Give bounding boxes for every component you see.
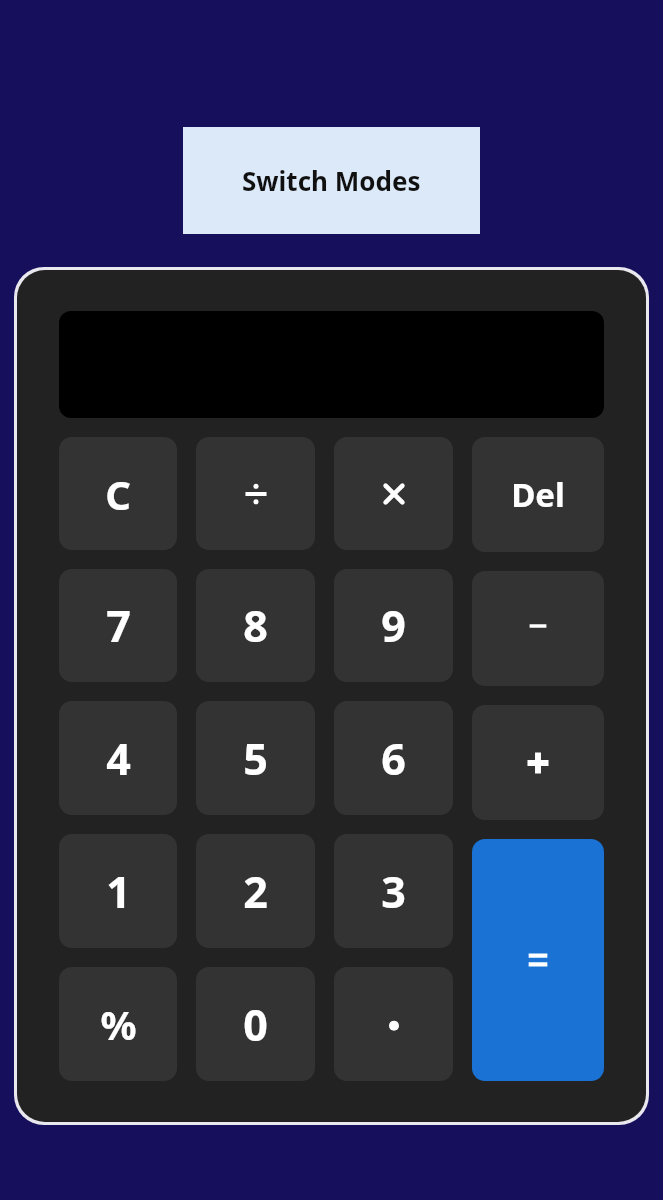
staticText: 3 bbox=[381, 862, 406, 921]
button[interactable]: Equals bbox=[472, 839, 604, 1081]
button[interactable]: 2 bbox=[196, 834, 315, 948]
button[interactable]: Switch Modes bbox=[183, 127, 480, 234]
button[interactable]: 4 bbox=[59, 701, 177, 815]
button[interactable]: Divide bbox=[196, 437, 315, 550]
button[interactable]: Decimal point bbox=[334, 967, 453, 1081]
button[interactable]: 3 bbox=[334, 834, 453, 948]
staticText: Switch Modes bbox=[242, 163, 421, 198]
staticText: 8 bbox=[243, 596, 268, 655]
button[interactable]: 7 bbox=[59, 569, 177, 682]
staticText: 6 bbox=[381, 729, 406, 788]
staticText: 5 bbox=[243, 729, 268, 788]
staticText: C bbox=[105, 467, 131, 521]
button[interactable]: 9 bbox=[334, 569, 453, 682]
staticText: 4 bbox=[106, 729, 131, 788]
button[interactable]: % bbox=[59, 967, 177, 1081]
button[interactable]: 0 bbox=[196, 967, 315, 1081]
staticText: 9 bbox=[381, 596, 406, 655]
button[interactable]: Multiply bbox=[334, 437, 453, 550]
button[interactable]: 1 bbox=[59, 834, 177, 948]
staticText: % bbox=[100, 997, 137, 1051]
button[interactable]: C bbox=[59, 437, 177, 550]
staticText: 2 bbox=[243, 862, 268, 921]
button[interactable]: Del bbox=[472, 437, 604, 552]
staticText: 0 bbox=[243, 995, 268, 1054]
staticText: 1 bbox=[106, 862, 131, 921]
button[interactable]: 8 bbox=[196, 569, 315, 682]
staticText: Del bbox=[511, 472, 565, 517]
button[interactable]: 6 bbox=[334, 701, 453, 815]
button[interactable]: Minus bbox=[472, 571, 604, 686]
staticText: 7 bbox=[106, 596, 131, 655]
button[interactable]: 5 bbox=[196, 701, 315, 815]
button[interactable]: Plus bbox=[472, 705, 604, 820]
